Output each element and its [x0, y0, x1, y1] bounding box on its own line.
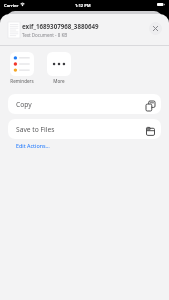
button[interactable]: Reminders: [10, 52, 34, 84]
staticText: exif_1689307968_3880649: [22, 22, 99, 30]
staticText: Text Document - 8 KB: [22, 32, 68, 38]
staticText: Carrier: [4, 3, 19, 9]
staticText: Save to Files: [16, 125, 55, 134]
staticText: Edit Actions…: [16, 142, 50, 149]
button[interactable]: exif_1689307968_3880649: [0, 14, 169, 45]
staticText: 1:12 PM: [75, 3, 91, 9]
button[interactable]: More: [47, 52, 71, 84]
staticText: Reminders: [10, 78, 34, 84]
staticText: More: [53, 78, 65, 84]
button[interactable]: Copy: [8, 94, 161, 114]
staticText: Copy: [16, 100, 32, 109]
button[interactable]: Save to Files: [8, 119, 161, 139]
button[interactable]: Edit Actions…: [16, 142, 50, 149]
button[interactable]: Close: [149, 22, 162, 35]
